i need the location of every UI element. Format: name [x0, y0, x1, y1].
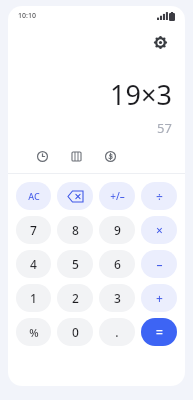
- button[interactable]: ÷: [141, 182, 177, 210]
- staticText: 57: [157, 119, 172, 137]
- staticText: 0: [72, 324, 79, 340]
- staticText: 10:10: [18, 11, 36, 21]
- staticText: 8: [72, 222, 79, 238]
- staticText: 6: [114, 256, 121, 272]
- staticText: 7: [30, 222, 37, 238]
- button[interactable]: Table: [66, 146, 86, 166]
- button[interactable]: 8: [57, 216, 93, 244]
- staticText: –: [156, 256, 163, 272]
- button[interactable]: Backspace: [57, 182, 93, 210]
- button[interactable]: AC: [16, 182, 51, 210]
- staticText: 19×3: [110, 76, 172, 113]
- staticText: 4: [30, 256, 37, 272]
- staticText: 1: [30, 290, 37, 306]
- button[interactable]: 6: [99, 250, 135, 278]
- button[interactable]: 5: [57, 250, 93, 278]
- staticText: .: [115, 324, 119, 340]
- button[interactable]: 2: [57, 284, 93, 312]
- staticText: +/–: [110, 189, 125, 203]
- staticText: +: [156, 290, 163, 306]
- button[interactable]: 4: [16, 250, 51, 278]
- staticText: AC: [28, 190, 40, 202]
- button[interactable]: 1: [16, 284, 51, 312]
- staticText: 5: [72, 256, 79, 272]
- staticText: %: [29, 325, 39, 340]
- button[interactable]: 3: [99, 284, 135, 312]
- button[interactable]: =: [141, 318, 177, 346]
- button[interactable]: Currency converter: [100, 146, 120, 166]
- staticText: 3: [114, 290, 121, 306]
- button[interactable]: 9: [99, 216, 135, 244]
- button[interactable]: 0: [57, 318, 93, 346]
- button[interactable]: %: [16, 318, 51, 346]
- staticText: ÷: [156, 188, 163, 204]
- staticText: ×: [156, 222, 163, 238]
- staticText: =: [156, 324, 163, 340]
- button[interactable]: .: [99, 318, 135, 346]
- staticText: 2: [72, 290, 79, 306]
- button[interactable]: +: [141, 284, 177, 312]
- button[interactable]: ×: [141, 216, 177, 244]
- button[interactable]: 7: [16, 216, 51, 244]
- staticText: 9: [114, 222, 121, 238]
- button[interactable]: –: [141, 250, 177, 278]
- button[interactable]: Settings: [147, 29, 173, 55]
- button[interactable]: +/–: [99, 182, 135, 210]
- button[interactable]: History: [32, 146, 52, 166]
